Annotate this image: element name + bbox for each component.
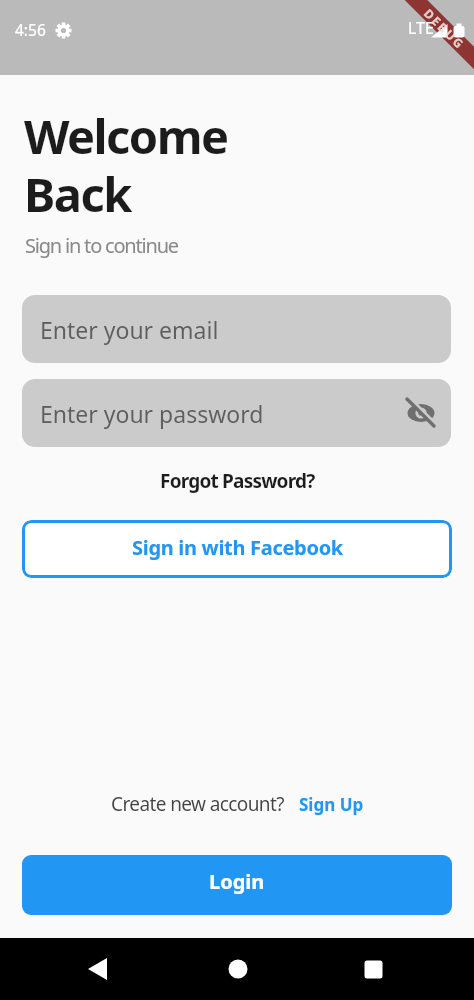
button[interactable]: Sign Up xyxy=(299,793,364,816)
button[interactable]: Sign in with Facebook xyxy=(22,520,452,578)
staticText: Welcome Back xyxy=(24,104,228,226)
staticText: Login xyxy=(209,868,265,895)
staticText: Forgot Password? xyxy=(160,468,315,494)
staticText: DEBUG xyxy=(421,5,469,53)
staticText: LTE xyxy=(408,17,434,39)
staticText: Sign in with Facebook xyxy=(132,534,343,561)
staticText: Sign Up xyxy=(299,793,364,816)
staticText: Enter your email xyxy=(40,314,219,345)
button[interactable]: Forgot Password? xyxy=(160,468,315,494)
button[interactable] xyxy=(346,938,401,1000)
button[interactable] xyxy=(210,938,265,1000)
button[interactable]: Enter your email xyxy=(22,295,451,363)
staticText: 4:56 xyxy=(15,19,46,40)
staticText: Enter your password xyxy=(40,398,264,429)
button[interactable] xyxy=(403,395,439,431)
button[interactable]: Login xyxy=(22,855,452,915)
staticText: Create new account? xyxy=(111,791,284,817)
staticText: Sign in to continue xyxy=(25,232,178,259)
button[interactable] xyxy=(70,938,125,1000)
button[interactable]: Enter your password xyxy=(22,379,451,447)
